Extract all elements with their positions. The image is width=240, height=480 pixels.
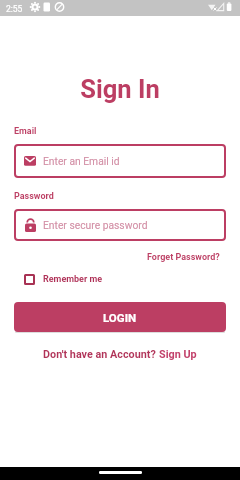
button[interactable]: Don't have an Account? xyxy=(0,348,240,361)
staticText: Sign In xyxy=(0,74,240,104)
staticText: LOGIN xyxy=(103,311,137,324)
button[interactable]: LOGIN xyxy=(14,302,226,332)
staticText: Email xyxy=(14,126,37,137)
staticText: Sign Up xyxy=(159,348,197,361)
staticText: Don't have an Account? xyxy=(43,348,159,361)
staticText: Password xyxy=(14,191,54,202)
button[interactable]: Enter secure password xyxy=(14,209,226,241)
button[interactable]: Remember me xyxy=(24,274,103,285)
staticText: 2:55 xyxy=(6,4,23,14)
staticText: Enter secure password xyxy=(43,219,148,231)
staticText: Remember me xyxy=(43,274,103,285)
button[interactable]: Forget Password? xyxy=(0,252,220,263)
staticText: Forget Password? xyxy=(147,252,220,263)
button[interactable]: Enter an Email id xyxy=(14,144,226,178)
staticText: Enter an Email id xyxy=(43,155,120,167)
